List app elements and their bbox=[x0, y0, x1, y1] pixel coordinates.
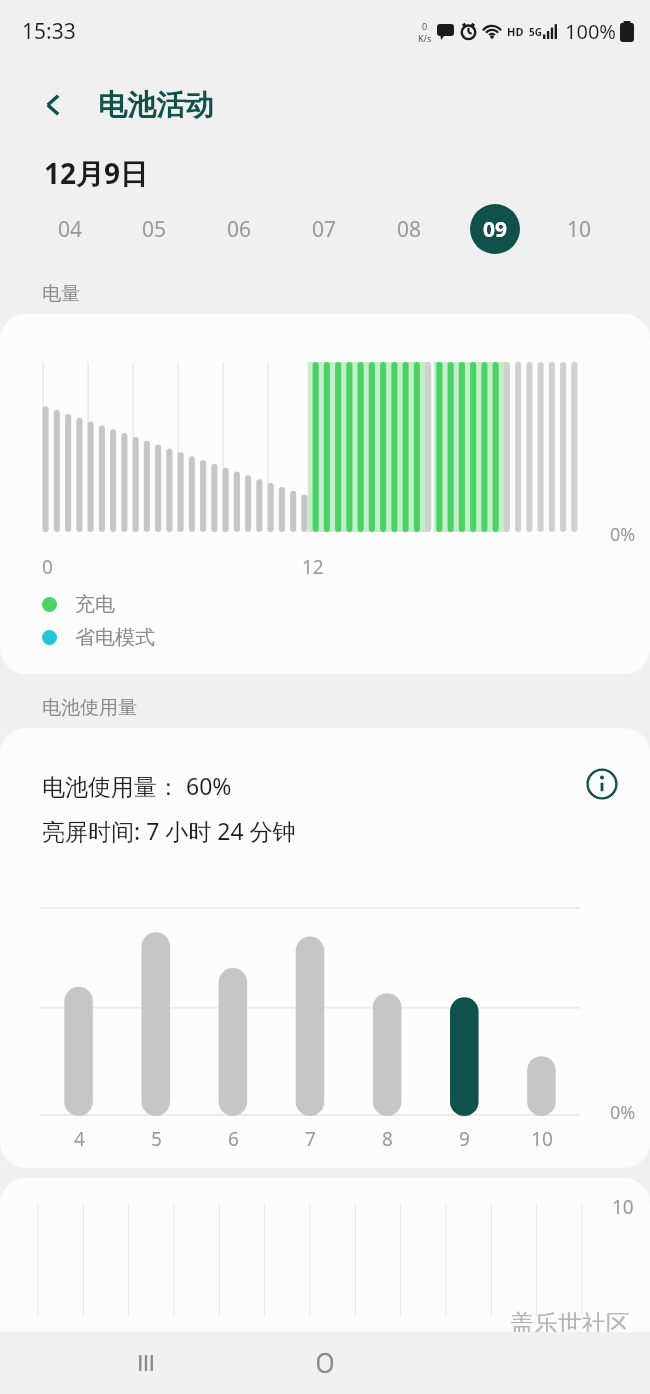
staticText: 9 bbox=[459, 1126, 470, 1152]
staticText: 04 bbox=[58, 215, 83, 244]
staticText: 10 bbox=[567, 215, 592, 244]
staticText: 06 bbox=[227, 215, 252, 244]
button[interactable]: 04 bbox=[28, 200, 112, 258]
staticText: 5 bbox=[151, 1126, 162, 1152]
staticText: 12 bbox=[302, 554, 324, 580]
staticText: 亮屏时间: 7 小时 24 分钟 bbox=[42, 815, 296, 846]
staticText: 10 bbox=[531, 1126, 553, 1152]
button[interactable]: 05 bbox=[112, 200, 197, 258]
staticText: K/s bbox=[418, 32, 432, 44]
staticText: 8 bbox=[382, 1126, 393, 1152]
staticText: 盖乐世社区 bbox=[510, 1309, 630, 1339]
staticText: 07 bbox=[312, 215, 337, 244]
staticText: 省电模式 bbox=[75, 625, 155, 650]
staticText: 电池使用量： 60% bbox=[42, 770, 232, 801]
staticText: 0 bbox=[422, 20, 428, 32]
button[interactable]: Info bbox=[580, 762, 624, 806]
staticText: 0 bbox=[42, 554, 53, 580]
staticText: 08 bbox=[397, 215, 422, 244]
button[interactable]: 09 bbox=[452, 200, 537, 258]
staticText: 12月9日 bbox=[44, 154, 149, 192]
staticText: 电池活动 bbox=[98, 87, 214, 124]
staticText: 电池使用量 bbox=[42, 696, 137, 720]
button[interactable]: Back bbox=[32, 83, 76, 127]
button[interactable]: 08 bbox=[367, 200, 452, 258]
staticText: HD bbox=[507, 24, 524, 39]
staticText: 4 bbox=[74, 1126, 85, 1152]
staticText: 10 bbox=[612, 1194, 634, 1220]
staticText: 15:33 bbox=[22, 17, 76, 46]
staticText: 充电 bbox=[75, 592, 115, 617]
button[interactable]: 06 bbox=[197, 200, 282, 258]
staticText: 05 bbox=[142, 215, 167, 244]
staticText: 电量 bbox=[42, 282, 80, 306]
staticText: 7 bbox=[305, 1126, 316, 1152]
button[interactable]: Recents bbox=[122, 1339, 170, 1387]
staticText: 0% bbox=[610, 522, 636, 547]
staticText: 5G bbox=[529, 25, 542, 39]
staticText: 100% bbox=[565, 18, 616, 45]
button[interactable]: 07 bbox=[282, 200, 367, 258]
staticText: 09 bbox=[483, 215, 508, 244]
button[interactable]: Home bbox=[301, 1339, 349, 1387]
staticText: 6 bbox=[228, 1126, 239, 1152]
staticText: 0% bbox=[610, 1100, 636, 1125]
button[interactable]: 10 bbox=[537, 200, 622, 258]
